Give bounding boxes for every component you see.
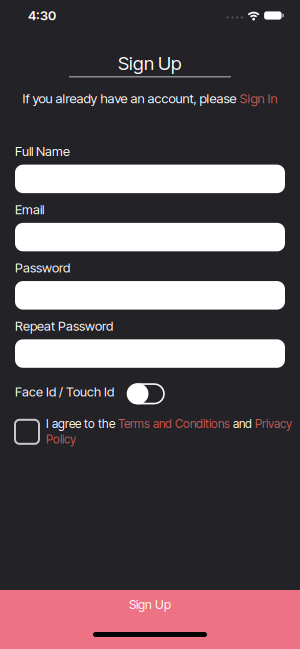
staticText: I agree to the: [46, 416, 118, 431]
staticText: Face Id / Touch Id: [15, 384, 114, 400]
button[interactable]: I agree to the Terms and Conditions and …: [15, 420, 39, 444]
button[interactable]: Privacy: [255, 416, 292, 431]
staticText: Sign In: [236, 90, 277, 106]
button[interactable]: Sign In: [236, 90, 277, 106]
staticText: and: [230, 416, 255, 431]
staticText: Sign Up: [118, 52, 182, 75]
button[interactable]: Full Name: [15, 165, 285, 193]
staticText: Email: [15, 202, 44, 217]
button[interactable]: Face Id / Touch Id: [127, 383, 164, 404]
staticText: Sign Up: [129, 597, 171, 612]
button[interactable]: Terms and Conditions: [118, 416, 230, 431]
button[interactable]: Email: [15, 223, 285, 251]
staticText: If you already have an account, please: [22, 90, 236, 106]
button[interactable]: Repeat Password: [15, 339, 285, 368]
staticText: Policy: [46, 432, 76, 446]
staticText: 4:30: [28, 8, 56, 23]
button[interactable]: Sign Up: [0, 590, 300, 649]
staticText: Terms and Conditions: [118, 416, 230, 431]
staticText: Privacy: [255, 416, 292, 431]
button[interactable]: Policy: [46, 432, 76, 446]
staticText: Full Name: [15, 143, 70, 159]
button[interactable]: Password: [15, 281, 285, 310]
staticText: Password: [15, 260, 70, 276]
staticText: Repeat Password: [15, 318, 113, 334]
